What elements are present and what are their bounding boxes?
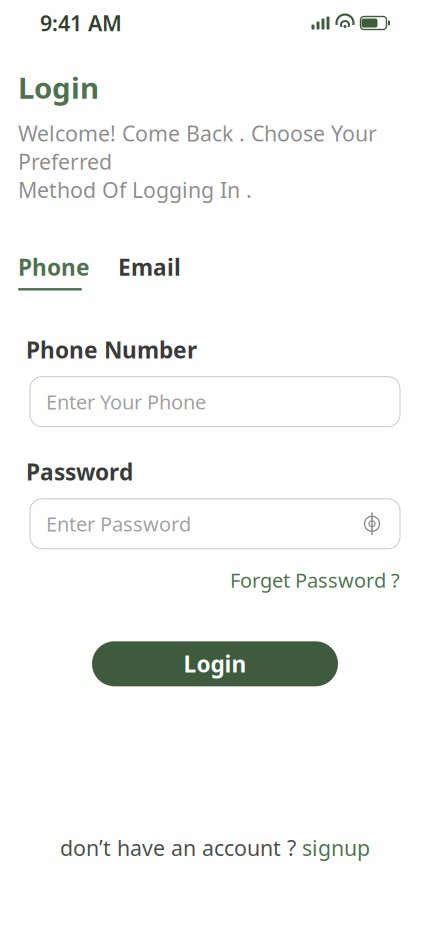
staticText: Welcome! Come Back . Choose Your Preferr… xyxy=(18,119,377,204)
staticText: don’t have an account ? xyxy=(60,834,296,862)
button[interactable]: signup xyxy=(302,834,370,862)
button[interactable]: Email xyxy=(90,252,181,282)
staticText: Enter Your Phone xyxy=(46,388,206,415)
staticText: Phone xyxy=(18,252,90,282)
staticText: Login xyxy=(183,649,246,679)
staticText: Email xyxy=(118,252,181,282)
button[interactable]: Show password xyxy=(360,512,384,536)
staticText: 9:41 AM xyxy=(40,9,122,37)
staticText: Login xyxy=(18,68,99,107)
button[interactable]: Login xyxy=(92,641,338,686)
staticText: Enter Password xyxy=(46,510,191,537)
staticText: Phone Number xyxy=(26,334,197,365)
button[interactable]: Phone xyxy=(18,252,90,290)
staticText: signup xyxy=(302,834,370,862)
staticText: Forget Password ? xyxy=(230,567,400,593)
staticText: Password xyxy=(26,457,133,487)
button[interactable]: Forget Password ? xyxy=(230,567,400,593)
